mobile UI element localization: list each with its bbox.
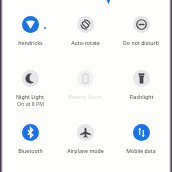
button[interactable]: Flashlight	[113, 70, 169, 100]
button[interactable]: Do not disturb	[113, 16, 169, 46]
staticText: Flashlight	[129, 93, 154, 100]
button[interactable]: Bluetooth	[2, 124, 58, 154]
staticText: Auto-rotate	[71, 39, 100, 46]
button[interactable]: Airplane mode	[57, 124, 113, 154]
button[interactable]: hendricks	[2, 16, 58, 46]
staticText: On at 8 PM	[17, 100, 44, 107]
button[interactable]: Auto-rotate	[57, 16, 113, 46]
staticText: Do not disturb	[123, 39, 159, 46]
staticText: Mobile data	[126, 147, 156, 154]
staticText: Bluetooth	[18, 147, 43, 154]
button[interactable]: Mobile data	[113, 124, 169, 154]
staticText: Airplane mode	[67, 147, 104, 154]
staticText: hendricks	[18, 39, 43, 46]
staticText: Battery Saver	[68, 93, 102, 100]
button[interactable]: Night Light	[2, 70, 58, 107]
button[interactable]: Battery Saver	[57, 70, 113, 100]
staticText: Night Light	[16, 93, 44, 100]
